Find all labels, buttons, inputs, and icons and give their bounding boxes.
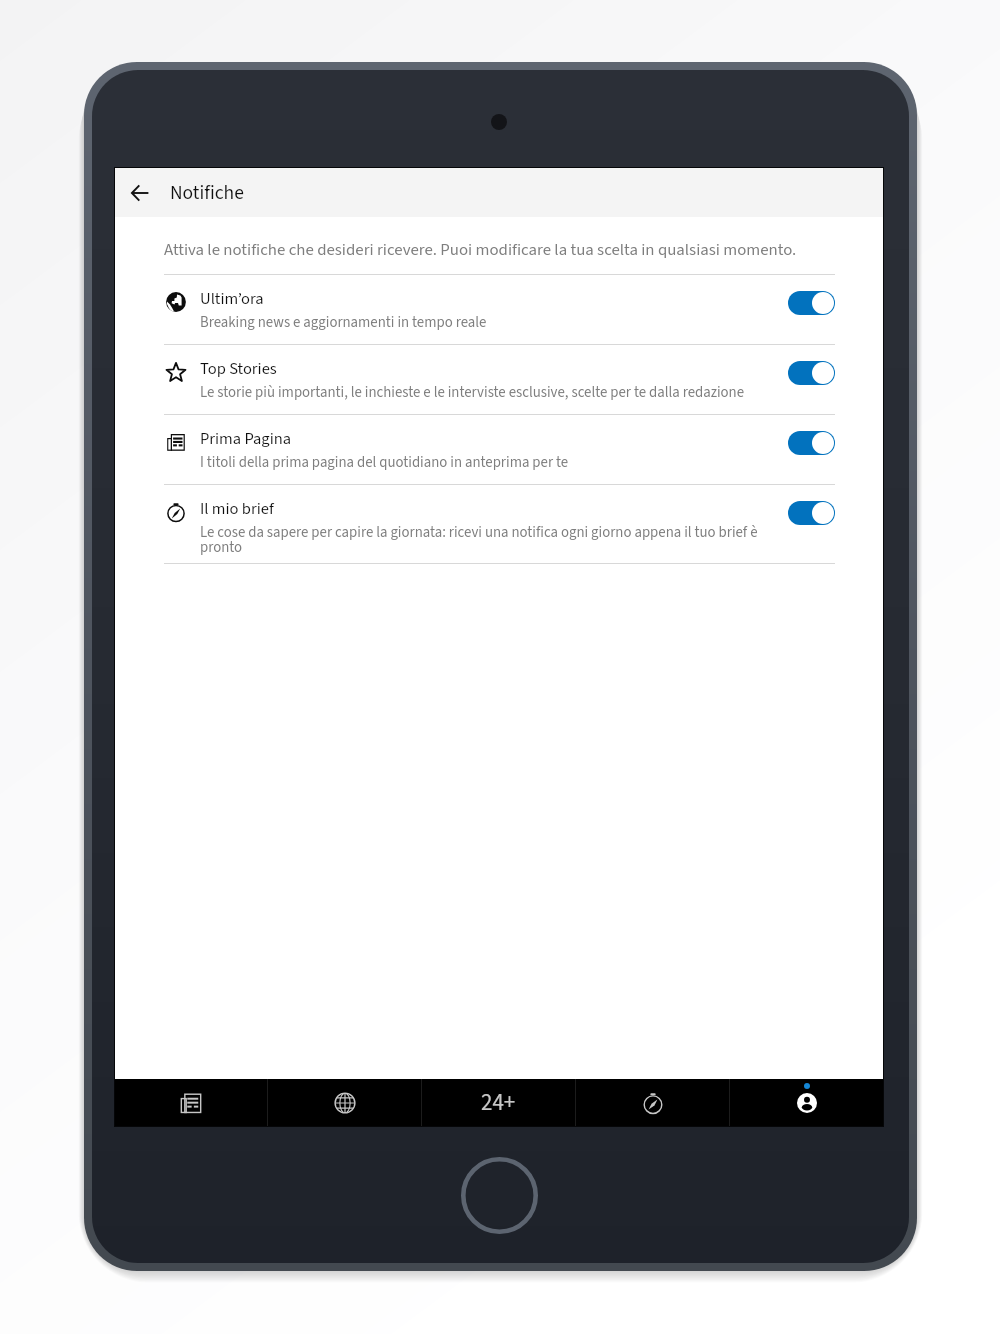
staticText: Le cose da sapere per capire la giornata… bbox=[200, 522, 764, 558]
staticText: Notifiche bbox=[170, 179, 244, 207]
button[interactable]: Scopri bbox=[576, 1079, 729, 1126]
button[interactable]: Notizie bbox=[115, 1079, 267, 1126]
button[interactable]: 24+ bbox=[422, 1079, 575, 1126]
button[interactable]: Attiva notifiche bbox=[788, 431, 835, 455]
button[interactable]: Top Stories bbox=[164, 345, 835, 414]
button[interactable]: Indietro bbox=[116, 169, 164, 217]
staticText: Prima Pagina bbox=[200, 427, 292, 450]
staticText: Le storie più importanti, le inchieste e… bbox=[200, 382, 745, 403]
staticText: I titoli della prima pagina del quotidia… bbox=[200, 452, 569, 473]
staticText: Top Stories bbox=[200, 357, 277, 380]
button[interactable]: Attiva notifiche bbox=[788, 501, 835, 525]
staticText: Il mio brief bbox=[200, 497, 274, 520]
button[interactable]: Attiva notifiche bbox=[788, 291, 835, 315]
button[interactable]: Ultim’ora bbox=[164, 275, 835, 344]
staticText: Ultim’ora bbox=[200, 287, 264, 310]
button[interactable]: Il mio brief bbox=[164, 485, 835, 563]
button[interactable]: Profilo bbox=[730, 1079, 883, 1126]
button[interactable]: Attiva notifiche bbox=[788, 361, 835, 385]
staticText: 24+ bbox=[481, 1086, 516, 1119]
button[interactable]: Prima Pagina bbox=[164, 415, 835, 484]
staticText: Attiva le notifiche che desideri ricever… bbox=[164, 238, 797, 262]
button[interactable]: Mondo bbox=[268, 1079, 421, 1126]
staticText: Breaking news e aggiornamenti in tempo r… bbox=[200, 312, 487, 333]
